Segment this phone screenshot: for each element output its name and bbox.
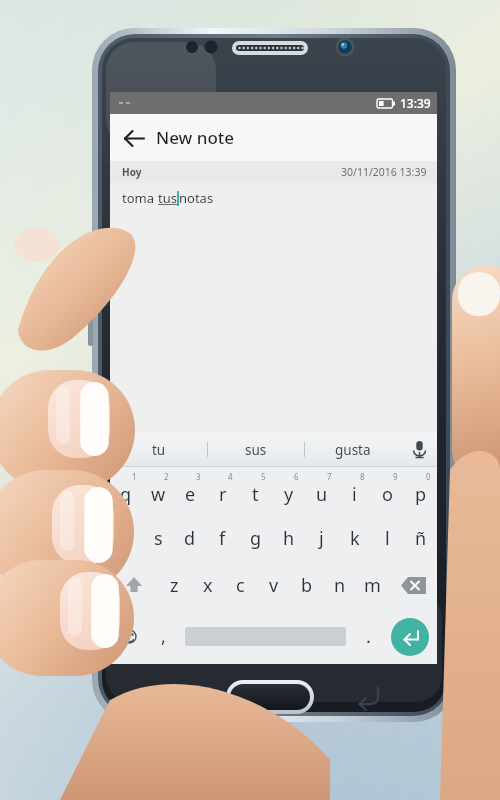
button[interactable]: tu	[110, 432, 207, 467]
button[interactable]: 6	[272, 467, 305, 515]
staticText: r	[219, 482, 227, 507]
staticText: q	[120, 482, 132, 507]
staticText: h	[283, 526, 295, 551]
button[interactable]: g	[239, 515, 272, 562]
staticText: 4	[228, 471, 233, 482]
staticText: toma	[122, 189, 158, 207]
staticText: y	[284, 482, 294, 507]
staticText: 3	[196, 471, 201, 482]
button[interactable]: Space	[178, 609, 353, 664]
staticText: New note	[156, 126, 235, 149]
staticText: z	[170, 573, 179, 598]
button[interactable]: 5	[239, 467, 272, 515]
button[interactable]: a	[110, 515, 142, 562]
button[interactable]: d	[174, 515, 206, 562]
staticText: ñ	[415, 526, 427, 551]
button[interactable]: j	[305, 515, 338, 562]
staticText: 13:39	[400, 95, 431, 111]
button[interactable]: v	[257, 562, 290, 609]
button[interactable]: 8	[338, 467, 371, 515]
button[interactable]: gusta	[305, 432, 401, 467]
button[interactable]: 2	[142, 467, 174, 515]
button[interactable]: 0	[404, 467, 437, 515]
staticText: 0	[426, 471, 431, 482]
button[interactable]: ,	[148, 609, 178, 664]
staticText: k	[350, 526, 360, 551]
button[interactable]: 7	[305, 467, 338, 515]
button[interactable]: l	[371, 515, 404, 562]
button[interactable]: 1	[110, 467, 142, 515]
button[interactable]: s	[142, 515, 174, 562]
button[interactable]: f	[206, 515, 239, 562]
button[interactable]: Delete	[389, 562, 437, 609]
staticText: v	[269, 573, 279, 598]
staticText: p	[415, 482, 427, 507]
staticText: g	[250, 526, 262, 551]
staticText: .	[366, 624, 371, 649]
button[interactable]: Voice input	[401, 432, 437, 467]
staticText: 8	[360, 471, 365, 482]
staticText: m	[364, 573, 381, 598]
staticText: 9	[393, 471, 398, 482]
button[interactable]: b	[290, 562, 323, 609]
button[interactable]: x	[191, 562, 224, 609]
staticText: o	[382, 482, 393, 507]
staticText: u	[316, 482, 328, 507]
button[interactable]: m	[356, 562, 389, 609]
button[interactable]: 3	[174, 467, 206, 515]
button[interactable]: Emoji	[110, 609, 148, 664]
staticText: s	[154, 526, 163, 551]
staticText: l	[385, 526, 390, 551]
staticText: w	[151, 482, 166, 507]
staticText: 7	[327, 471, 332, 482]
staticText: 6	[294, 471, 299, 482]
staticText: 5	[261, 471, 266, 482]
staticText: d	[184, 526, 196, 551]
button[interactable]: Enter	[383, 609, 437, 664]
button[interactable]: c	[224, 562, 257, 609]
button[interactable]: .	[353, 609, 383, 664]
staticText: t	[252, 482, 259, 507]
button[interactable]: h	[272, 515, 305, 562]
staticText: e	[185, 482, 196, 507]
button[interactable]: Shift	[110, 562, 158, 609]
staticText: tu	[152, 441, 166, 459]
staticText: f	[219, 526, 226, 551]
staticText: c	[236, 573, 245, 598]
staticText: x	[203, 573, 213, 598]
button[interactable]: 4	[206, 467, 239, 515]
staticText: ,	[161, 624, 166, 649]
staticText: sus	[245, 441, 267, 459]
staticText: notas	[179, 189, 214, 207]
button[interactable]: ñ	[404, 515, 437, 562]
staticText: tus	[158, 189, 177, 207]
staticText: 30/11/2016 13:39	[341, 165, 427, 179]
staticText: 1	[132, 471, 137, 482]
button[interactable]: n	[323, 562, 356, 609]
staticText: j	[319, 526, 324, 551]
staticText: Hoy	[122, 165, 142, 179]
staticText: gusta	[335, 441, 371, 459]
staticText: i	[352, 482, 357, 507]
button[interactable]: z	[158, 562, 191, 609]
staticText: b	[301, 573, 313, 598]
staticText: a	[121, 526, 132, 551]
button[interactable]: 9	[371, 467, 404, 515]
staticText: 2	[164, 471, 169, 482]
button[interactable]: Back	[110, 115, 156, 161]
button[interactable]: sus	[208, 432, 304, 467]
staticText: n	[334, 573, 346, 598]
button[interactable]: k	[338, 515, 371, 562]
